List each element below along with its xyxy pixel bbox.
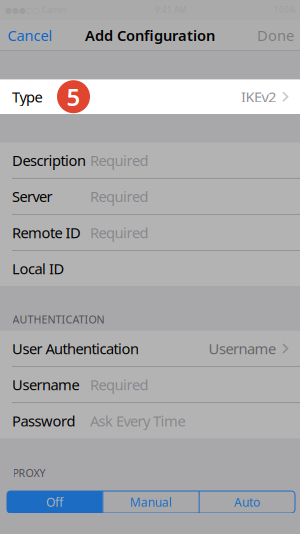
staticText: AUTHENTICATION — [12, 312, 104, 326]
staticText: Required — [90, 150, 148, 170]
button[interactable]: Auto — [200, 491, 295, 513]
button[interactable]: Off — [7, 491, 102, 513]
button[interactable]: Manual — [103, 491, 199, 513]
button[interactable]: Remote ID — [0, 215, 300, 250]
staticText: Username — [209, 339, 276, 358]
staticText: Auto — [234, 494, 260, 510]
staticText: Required — [90, 375, 148, 394]
staticText: 100% — [274, 5, 296, 15]
staticText: Add Configuration — [85, 25, 215, 45]
staticText: Off — [46, 494, 63, 510]
staticText: Required — [90, 223, 148, 242]
staticText: Type — [12, 87, 42, 106]
button[interactable]: Server — [0, 179, 300, 214]
staticText: 5 — [66, 81, 80, 113]
button[interactable]: Type — [0, 79, 300, 114]
staticText: Password — [12, 411, 75, 430]
button[interactable]: Local ID — [0, 251, 300, 286]
staticText: ●●●○○ Carrier — [5, 5, 67, 15]
staticText: IKEv2 — [241, 87, 276, 106]
button[interactable]: Username — [0, 367, 300, 402]
button[interactable]: User Authentication — [0, 331, 300, 366]
staticText: 9:41 AM — [155, 5, 186, 15]
staticText: Remote ID — [12, 223, 81, 242]
staticText: Manual — [130, 494, 172, 510]
staticText: Username — [12, 375, 79, 394]
staticText: Done — [257, 25, 294, 45]
button[interactable]: Description — [0, 143, 300, 178]
button[interactable]: Cancel — [0, 19, 60, 51]
staticText: PROXY — [12, 466, 45, 480]
staticText: User Authentication — [12, 339, 139, 358]
staticText: Ask Every Time — [90, 411, 185, 430]
button[interactable]: Password — [0, 403, 300, 438]
staticText: Server — [12, 187, 52, 206]
staticText: Local ID — [12, 259, 64, 278]
button[interactable]: Done — [251, 19, 300, 51]
staticText: Cancel — [7, 25, 52, 45]
staticText: Required — [90, 187, 148, 206]
staticText: Description — [12, 150, 86, 170]
